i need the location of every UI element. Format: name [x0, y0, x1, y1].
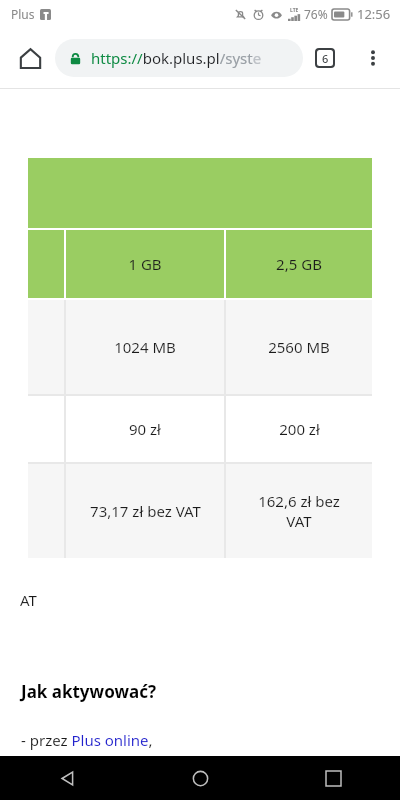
staticText: https://bok.plus.pl/syste — [91, 48, 262, 68]
staticText: Jak aktywować? — [21, 680, 157, 703]
button[interactable]: https://bok.plus.pl/syste — [55, 39, 303, 77]
staticText: - przez SMS wysłanego pod bezpłatny nume… — [21, 756, 374, 776]
button[interactable]: - przez Plus online, — [21, 730, 153, 750]
staticText: 1024 MB — [114, 337, 176, 357]
staticText: AT — [20, 590, 37, 610]
staticText: - przez Plus online, — [21, 730, 153, 750]
button[interactable]: Tabs, 6 open — [306, 39, 344, 77]
staticText: 90 zł — [129, 419, 161, 439]
staticText: 2,5 GB — [276, 254, 322, 274]
staticText: 162,6 zł bez VAT — [248, 491, 350, 531]
button[interactable]: Back — [0, 756, 134, 800]
staticText: 12:56 — [357, 5, 391, 23]
staticText: Plus — [11, 6, 35, 22]
staticText: 2560 MB — [268, 337, 330, 357]
staticText: 200 zł — [279, 419, 320, 439]
staticText: 76% — [304, 6, 328, 22]
button[interactable]: More options — [352, 37, 394, 79]
staticText: 73,17 zł bez VAT — [90, 501, 201, 521]
staticText: 6 — [322, 51, 329, 66]
button[interactable]: Home — [134, 756, 267, 800]
staticText: LTE — [290, 7, 299, 14]
button[interactable]: Home — [8, 36, 52, 80]
button[interactable]: Recent apps — [267, 756, 400, 800]
staticText: 1 GB — [128, 254, 162, 274]
